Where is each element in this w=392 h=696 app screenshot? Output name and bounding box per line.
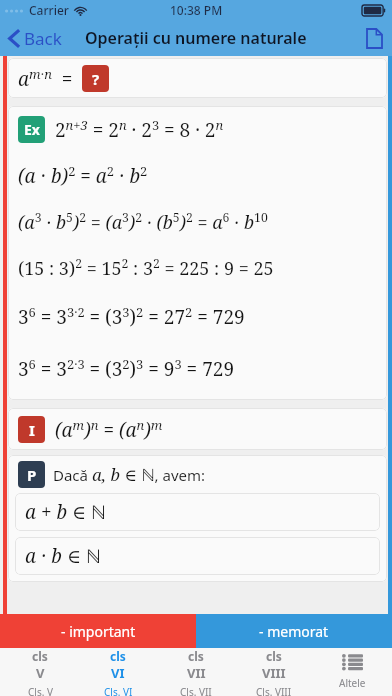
button[interactable]: Back bbox=[0, 20, 70, 56]
staticText: Cls. VIII bbox=[256, 685, 292, 696]
button[interactable]: a · b ∈ ℕ bbox=[15, 537, 380, 575]
staticText: (a · b)2 = a2 · b2 bbox=[18, 162, 148, 188]
staticText: Cls. VII bbox=[180, 685, 212, 696]
button[interactable]: a + b ∈ ℕ bbox=[15, 493, 380, 531]
staticText: ? bbox=[92, 69, 100, 89]
button[interactable]: I bbox=[8, 408, 387, 450]
staticText: Dacă a, b ∈ ℕ, avem: bbox=[53, 463, 206, 486]
button[interactable]: - memorat bbox=[196, 614, 392, 648]
staticText: cls bbox=[188, 648, 204, 664]
staticText: Operații cu numere naturale bbox=[85, 27, 307, 49]
staticText: 2n+3 = 2n · 23 = 8 · 2n bbox=[55, 116, 224, 142]
button[interactable]: P bbox=[8, 455, 387, 582]
button[interactable]: cls bbox=[158, 648, 234, 696]
staticText: V bbox=[36, 664, 45, 682]
button[interactable]: cls bbox=[236, 648, 312, 696]
staticText: Altele bbox=[339, 676, 366, 690]
staticText: VIII bbox=[262, 664, 286, 682]
button[interactable]: cls bbox=[80, 648, 156, 696]
staticText: Back bbox=[24, 27, 62, 50]
staticText: (am)n = (an)m bbox=[55, 416, 163, 442]
staticText: Ex bbox=[24, 120, 40, 139]
staticText: Cls. VI bbox=[104, 685, 133, 696]
staticText: cls bbox=[32, 648, 48, 664]
staticText: (a3 · b5)2 = (a3)2 · (b5)2 = a6 · b10 bbox=[18, 209, 268, 234]
staticText: P bbox=[27, 465, 37, 485]
staticText: Carrier bbox=[29, 2, 69, 18]
staticText: VII bbox=[187, 664, 206, 682]
staticText: (15 : 3)2 = 152 : 32 = 225 : 9 = 25 bbox=[18, 255, 274, 280]
staticText: a + b ∈ ℕ bbox=[25, 499, 106, 525]
button[interactable]: - important bbox=[0, 614, 196, 648]
staticText: Cls. V bbox=[28, 685, 53, 696]
button[interactable]: Document bbox=[356, 20, 392, 56]
staticText: am·n = bbox=[18, 65, 73, 91]
staticText: 10:38 PM bbox=[170, 2, 223, 18]
staticText: - memorat bbox=[259, 622, 329, 641]
staticText: cls bbox=[110, 648, 126, 664]
staticText: I bbox=[29, 420, 35, 440]
button[interactable]: Ex bbox=[8, 106, 387, 400]
staticText: - important bbox=[61, 622, 136, 641]
staticText: 36 = 32·3 = (32)3 = 93 = 729 bbox=[18, 355, 235, 381]
staticText: a · b ∈ ℕ bbox=[25, 543, 101, 569]
button[interactable]: Altele bbox=[314, 648, 390, 696]
staticText: VI bbox=[111, 664, 125, 682]
button[interactable]: cls bbox=[2, 648, 78, 696]
button[interactable]: am·n = bbox=[8, 58, 387, 98]
staticText: cls bbox=[266, 648, 282, 664]
staticText: 36 = 33·2 = (33)2 = 272 = 729 bbox=[18, 303, 245, 329]
